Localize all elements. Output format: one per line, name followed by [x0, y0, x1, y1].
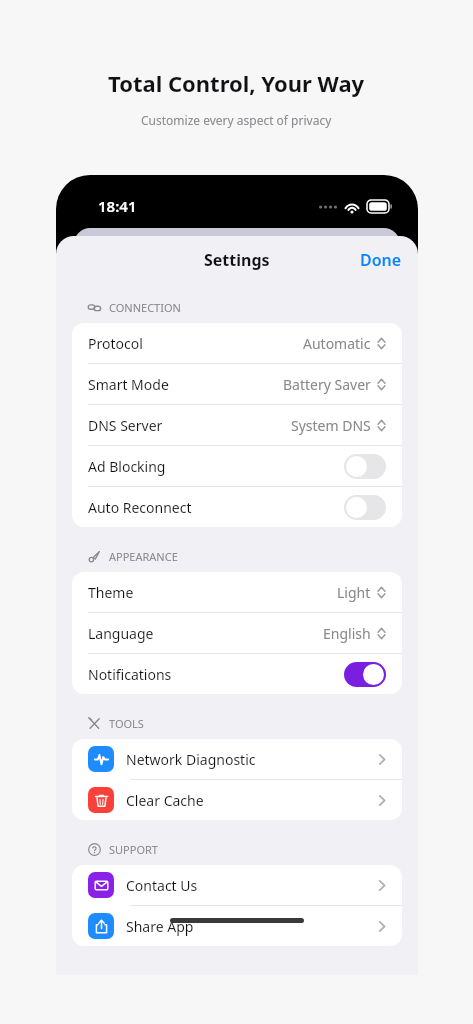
staticText: Ad Blocking	[88, 457, 166, 476]
button[interactable]: Protocol	[72, 323, 402, 363]
staticText: Settings	[204, 249, 270, 271]
staticText: Customize every aspect of privacy	[141, 112, 332, 128]
staticText: Language	[88, 624, 154, 643]
button[interactable]: Network Diagnostic	[72, 739, 402, 779]
staticText: Smart Mode	[88, 375, 169, 394]
staticText: Contact Us	[126, 876, 198, 895]
staticText: CONNECTION	[109, 300, 181, 315]
staticText: Protocol	[88, 334, 143, 353]
other: Open Network Diagnostic	[378, 753, 386, 766]
other: Open Share App	[378, 920, 386, 933]
staticText: Automatic	[303, 334, 371, 353]
staticText: Light	[337, 583, 371, 602]
staticText: System DNS	[291, 416, 371, 435]
button[interactable]: Contact Us	[72, 865, 402, 905]
staticText: Share App	[126, 917, 194, 936]
staticText: Done	[360, 249, 402, 271]
button[interactable]: Smart Mode	[72, 364, 402, 404]
staticText: Network Diagnostic	[126, 750, 256, 769]
staticText: SUPPORT	[109, 842, 158, 857]
staticText: English	[323, 624, 371, 643]
staticText: Notifications	[88, 665, 172, 684]
staticText: DNS Server	[88, 416, 163, 435]
staticText: 18:41	[98, 196, 137, 216]
button[interactable]: Language	[72, 613, 402, 653]
button[interactable]: Auto Reconnect	[72, 487, 402, 527]
staticText: TOOLS	[109, 716, 144, 731]
other: Open Contact Us	[378, 879, 386, 892]
staticText: APPEARANCE	[109, 549, 178, 564]
other: Open Clear Cache	[378, 794, 386, 807]
staticText: Theme	[88, 583, 134, 602]
staticText: Auto Reconnect	[88, 498, 192, 517]
staticText: Clear Cache	[126, 791, 204, 810]
staticText: Total Control, Your Way	[108, 68, 365, 98]
staticText: Battery Saver	[283, 375, 371, 394]
button[interactable]: Clear Cache	[72, 780, 402, 820]
button[interactable]: Notifications	[72, 654, 402, 694]
button[interactable]: Done	[344, 243, 418, 277]
button[interactable]: Share App	[72, 906, 402, 946]
button[interactable]: Theme	[72, 572, 402, 612]
button[interactable]: Ad Blocking	[72, 446, 402, 486]
button[interactable]: DNS Server	[72, 405, 402, 445]
